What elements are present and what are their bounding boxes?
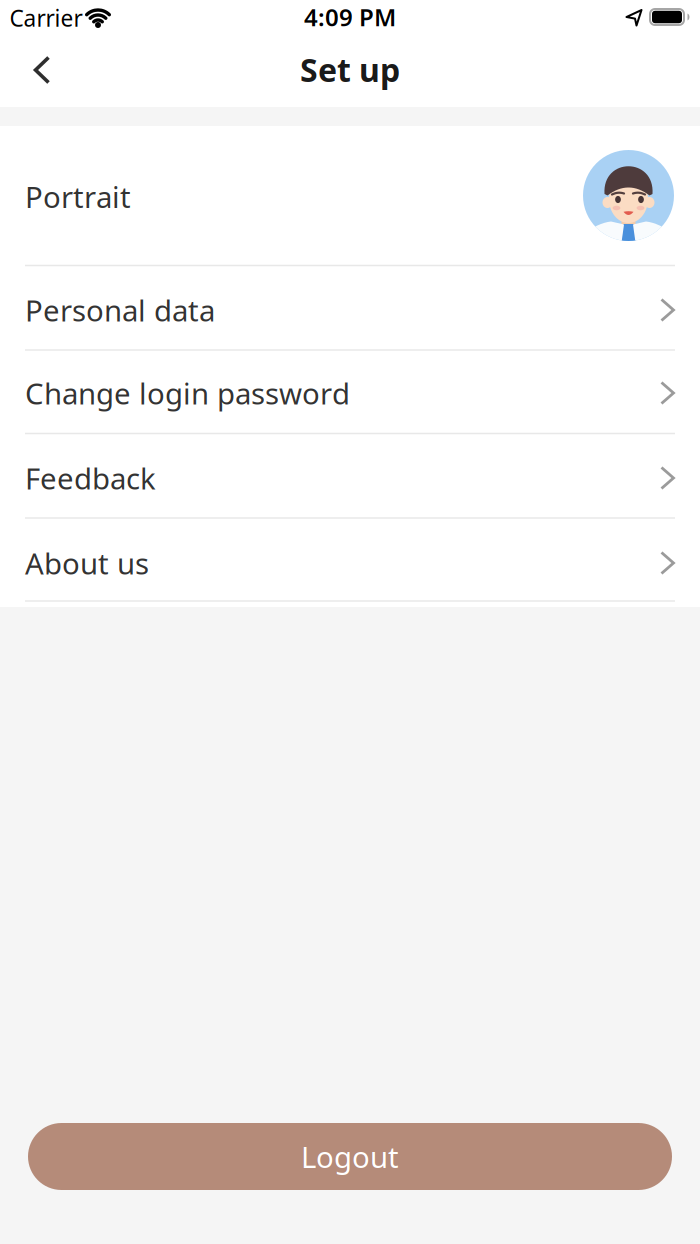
button[interactable]: About us: [0, 518, 700, 602]
staticText: Personal data: [25, 290, 215, 329]
staticText: Feedback: [25, 458, 156, 497]
staticText: Change login password: [25, 373, 350, 412]
staticText: Portrait: [25, 177, 131, 216]
button[interactable]: [15, 49, 81, 91]
button[interactable]: Feedback: [0, 433, 700, 517]
button[interactable]: Portrait: [0, 126, 700, 265]
button[interactable]: Change login password: [0, 348, 700, 432]
staticText: 4:09 PM: [304, 1, 396, 33]
button[interactable]: Personal data: [0, 265, 700, 349]
staticText: Set up: [300, 48, 400, 91]
button[interactable]: Logout: [28, 1123, 672, 1190]
staticText: Logout: [301, 1137, 399, 1176]
staticText: Carrier: [9, 3, 82, 33]
staticText: About us: [25, 543, 149, 582]
